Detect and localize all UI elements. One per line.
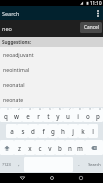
- button[interactable]: b: [55, 140, 65, 155]
- staticText: ,: [18, 161, 20, 168]
- button[interactable]: k: [78, 124, 88, 138]
- staticText: d: [31, 127, 35, 135]
- staticText: s: [21, 127, 25, 135]
- staticText: ?123: [2, 162, 11, 167]
- staticText: f: [42, 127, 45, 135]
- staticText: c: [38, 144, 42, 152]
- staticText: neoadjuvant: [3, 51, 34, 58]
- button[interactable]: n: [65, 140, 75, 155]
- button[interactable]: 5: [43, 108, 53, 122]
- button[interactable]: z: [14, 140, 25, 155]
- button[interactable]: Search: [85, 157, 103, 172]
- staticText: neointimal: [3, 66, 30, 73]
- button[interactable]: j: [68, 124, 78, 138]
- staticText: o: [86, 112, 90, 120]
- button[interactable]: 1: [0, 108, 11, 122]
- staticText: p: [96, 112, 100, 120]
- button[interactable]: 0: [93, 108, 103, 122]
- staticText: 11:10: [90, 0, 102, 6]
- button[interactable]: More options: [92, 6, 103, 20]
- staticText: 2: [18, 108, 20, 111]
- button[interactable]: 9: [83, 108, 93, 122]
- staticText: w: [14, 112, 19, 120]
- staticText: neonate: [3, 96, 24, 103]
- staticText: b: [58, 144, 62, 152]
- button[interactable]: Back: [15, 173, 29, 183]
- button[interactable]: Home: [45, 173, 59, 183]
- button[interactable]: g: [48, 124, 58, 138]
- staticText: e: [26, 112, 30, 120]
- staticText: j: [72, 127, 74, 135]
- button[interactable]: d: [28, 124, 38, 138]
- staticText: z: [18, 144, 21, 152]
- staticText: neo: [2, 25, 12, 32]
- staticText: Cancel: [84, 24, 99, 31]
- staticText: 1: [7, 108, 9, 111]
- staticText: 7: [69, 108, 71, 111]
- button[interactable]: 2: [11, 108, 22, 122]
- staticText: 6: [59, 108, 61, 111]
- button[interactable]: 6: [53, 108, 63, 122]
- staticText: v: [48, 144, 52, 152]
- staticText: r: [37, 112, 40, 120]
- staticText: neonatal: [3, 81, 25, 88]
- button[interactable]: 8: [73, 108, 83, 122]
- button[interactable]: m: [75, 140, 85, 155]
- button[interactable]: Cancel: [80, 22, 102, 33]
- staticText: g: [51, 127, 55, 135]
- staticText: t: [47, 112, 50, 120]
- button[interactable]: neoadjuvant: [0, 47, 103, 62]
- staticText: 8: [79, 108, 81, 111]
- staticText: .: [78, 161, 80, 168]
- staticText: y: [56, 112, 60, 120]
- button[interactable]: ?123: [0, 157, 13, 172]
- staticText: Suggestions:: [2, 39, 32, 45]
- button[interactable]: Recent apps: [74, 173, 88, 183]
- button[interactable]: f: [38, 124, 48, 138]
- staticText: a: [10, 127, 14, 135]
- button[interactable]: a: [6, 124, 17, 138]
- button[interactable]: 7: [63, 108, 73, 122]
- staticText: q: [4, 112, 8, 120]
- staticText: i: [77, 112, 79, 120]
- staticText: Search: [88, 162, 101, 167]
- button[interactable]: 3: [22, 108, 33, 122]
- button[interactable]: neointimal: [0, 62, 103, 77]
- staticText: u: [66, 112, 70, 120]
- staticText: Search: [2, 10, 20, 17]
- button[interactable]: ,: [13, 157, 24, 172]
- staticText: x: [28, 144, 32, 152]
- button[interactable]: h: [58, 124, 68, 138]
- staticText: 0: [99, 108, 101, 111]
- button[interactable]: l: [88, 124, 98, 138]
- button[interactable]: 4: [33, 108, 43, 122]
- button[interactable]: neonate: [0, 92, 103, 107]
- staticText: 4: [39, 108, 41, 111]
- staticText: 9: [89, 108, 91, 111]
- button[interactable]: Shift: [0, 140, 14, 155]
- button[interactable]: Backspace: [85, 140, 103, 155]
- button[interactable]: x: [25, 140, 35, 155]
- button[interactable]: s: [17, 124, 28, 138]
- staticText: k: [81, 127, 85, 135]
- staticText: 3: [29, 108, 31, 111]
- staticText: 5: [49, 108, 51, 111]
- button[interactable]: c: [35, 140, 45, 155]
- button[interactable]: v: [45, 140, 55, 155]
- staticText: l: [92, 127, 94, 135]
- staticText: n: [68, 144, 72, 152]
- staticText: m: [77, 144, 83, 152]
- staticText: h: [61, 127, 65, 135]
- button[interactable]: neonatal: [0, 77, 103, 92]
